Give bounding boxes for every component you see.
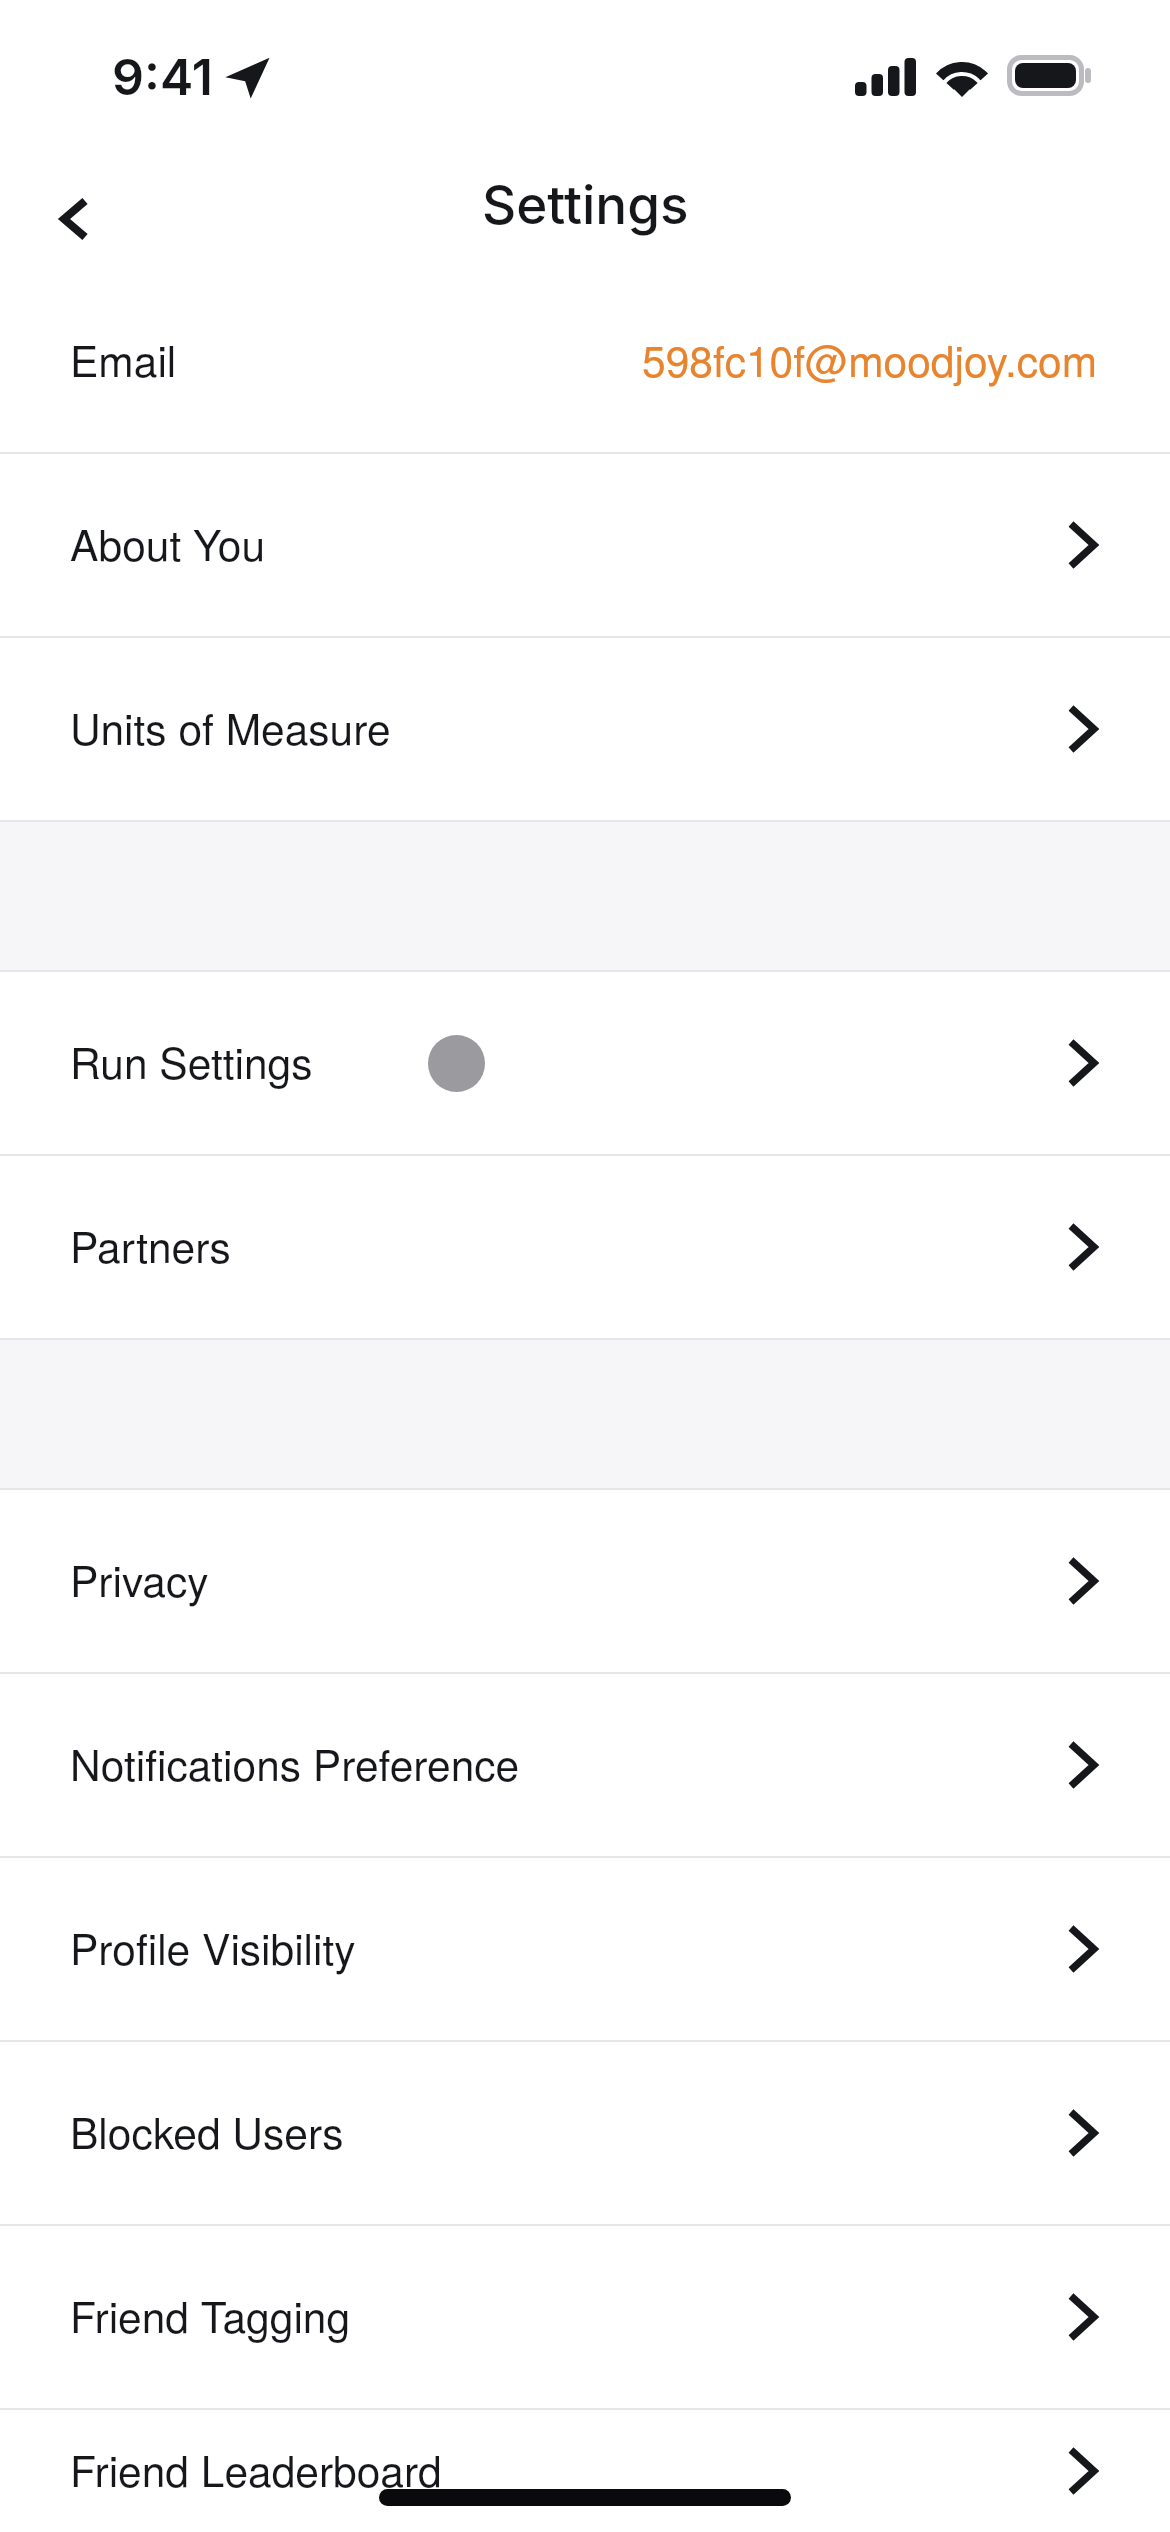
button[interactable]: Run Settings [0, 972, 1170, 1154]
staticText: Settings [482, 173, 689, 237]
staticText: Profile Visibility [70, 1916, 356, 1977]
staticText: Partners [70, 1214, 231, 1275]
staticText: Email [70, 328, 177, 389]
staticText: Privacy [70, 1548, 209, 1609]
button[interactable]: Email [0, 270, 1170, 452]
button[interactable]: Units of Measure [0, 638, 1170, 820]
staticText: Friend Tagging [70, 2284, 351, 2345]
staticText: Notifications Preference [70, 1732, 520, 1793]
staticText: Friend Leaderboard [70, 2438, 442, 2499]
staticText: About You [70, 512, 266, 573]
staticText: 9:41 [112, 47, 213, 107]
staticText: Run Settings [70, 1030, 313, 1091]
button[interactable]: Partners [0, 1156, 1170, 1338]
staticText: 598fc10f@moodjoy.com [642, 328, 1098, 389]
staticText: Blocked Users [70, 2100, 344, 2161]
button[interactable]: Profile Visibility [0, 1858, 1170, 2040]
staticText: Units of Measure [70, 696, 391, 757]
button[interactable]: Blocked Users [0, 2042, 1170, 2224]
button[interactable]: Back [30, 160, 114, 260]
button[interactable]: Privacy [0, 1490, 1170, 1672]
button[interactable]: Friend Leaderboard [0, 2410, 1170, 2532]
button[interactable]: Notifications Preference [0, 1674, 1170, 1856]
button[interactable]: About You [0, 454, 1170, 636]
button[interactable]: Friend Tagging [0, 2226, 1170, 2408]
